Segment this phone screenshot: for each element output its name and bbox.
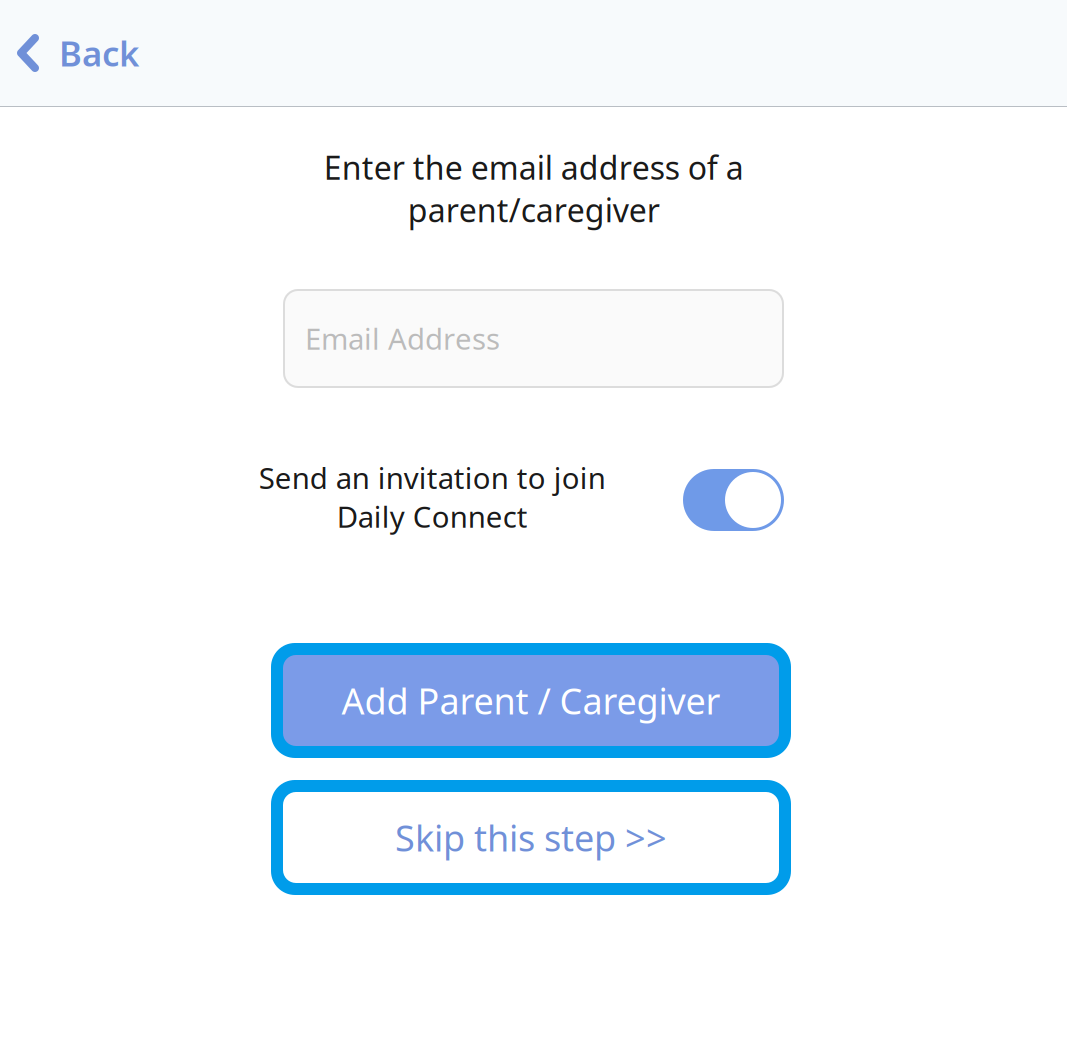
staticText: Skip this step >> — [395, 814, 667, 861]
button[interactable]: Email Address — [283, 289, 784, 388]
button[interactable]: Add Parent / Caregiver — [271, 643, 791, 758]
button[interactable]: Skip this step >> — [271, 780, 791, 895]
staticText: Back — [59, 30, 139, 76]
staticText: Send an invitation to join Daily Connect — [258, 458, 605, 536]
button[interactable]: Send an invitation to join Daily Connect — [683, 469, 784, 531]
staticText: Email Address — [305, 319, 500, 358]
staticText: Add Parent / Caregiver — [341, 677, 720, 724]
staticText: Enter the email address of a parent/care… — [323, 146, 743, 231]
button[interactable]: Back — [0, 0, 155, 106]
